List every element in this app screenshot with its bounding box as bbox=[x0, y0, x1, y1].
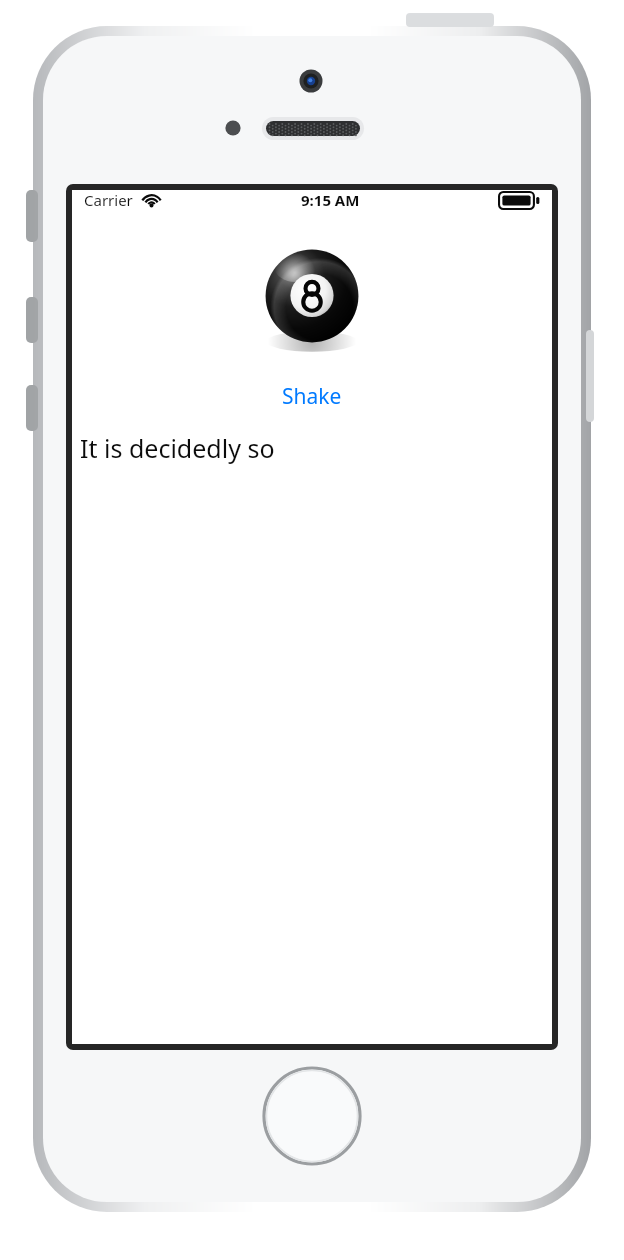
staticText: Shake bbox=[282, 382, 342, 411]
staticText: Carrier bbox=[84, 190, 133, 210]
button[interactable]: Shake bbox=[262, 376, 362, 417]
staticText: 9:15 AM bbox=[301, 190, 360, 210]
other: Magic 8 ball bbox=[261, 246, 363, 348]
staticText: It is decidedly so bbox=[80, 431, 275, 465]
